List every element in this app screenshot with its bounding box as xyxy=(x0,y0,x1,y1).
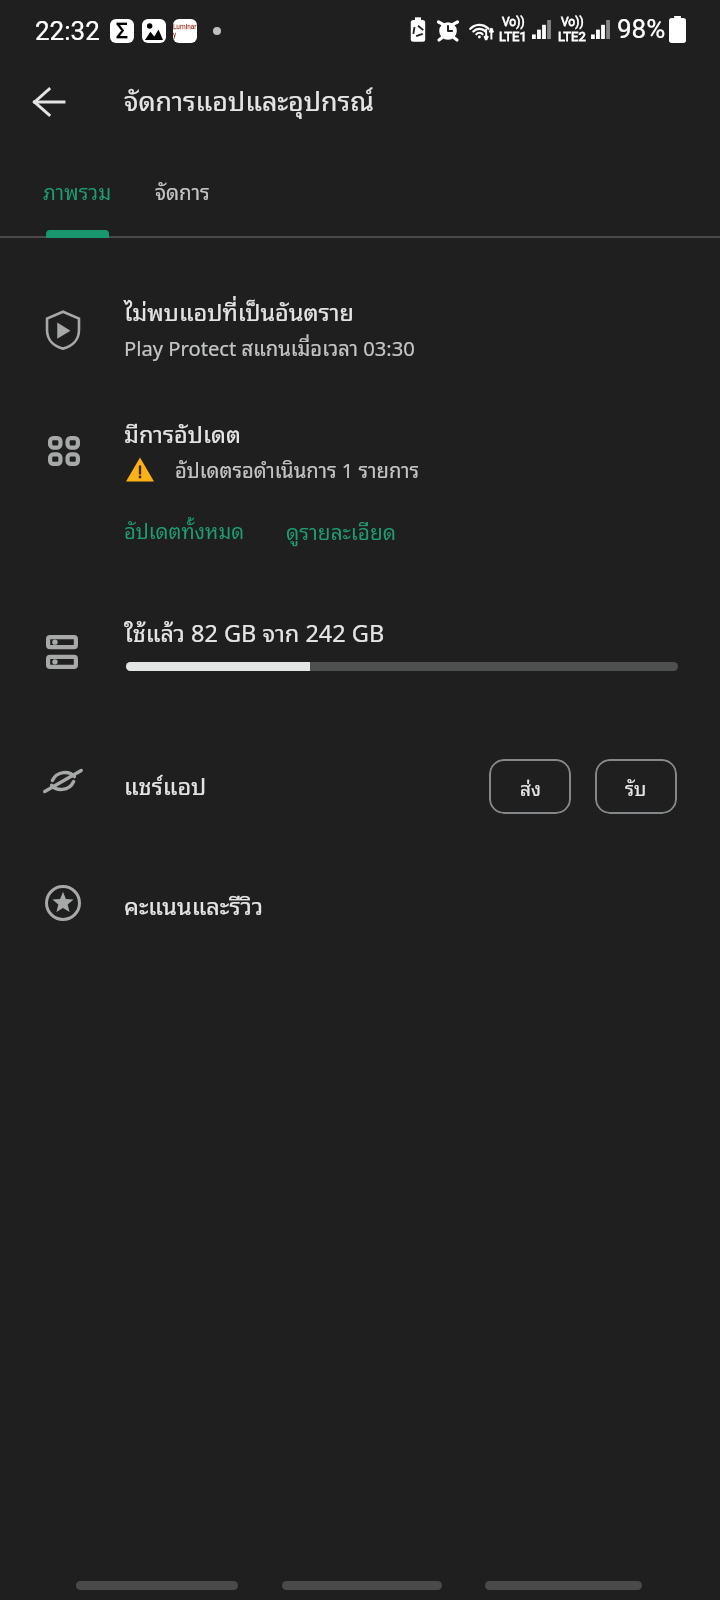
staticText: Vo)) xyxy=(502,15,525,29)
staticText: Vo)) xyxy=(561,15,584,29)
staticText: ดูรายละเอียด xyxy=(286,514,396,547)
button[interactable]: อัปเดตทั้งหมด xyxy=(124,514,245,546)
staticText: คะแนนและรีวิว xyxy=(124,886,263,924)
staticText: 98% xyxy=(617,14,666,44)
button[interactable]: ดูรายละเอียด xyxy=(286,514,396,547)
staticText: LTE1 xyxy=(499,29,527,44)
staticText: จัดการ xyxy=(155,174,210,207)
staticText: อัปเดตรอดำเนินการ 1 รายการ xyxy=(175,453,420,485)
staticText: แชร์แอป xyxy=(124,766,207,804)
staticText: จัดการแอปและอุปกรณ์ xyxy=(124,77,374,120)
button[interactable]: ไม่พบแอปที่เป็นอันตราย xyxy=(0,260,720,392)
button[interactable]: Back xyxy=(12,66,84,138)
staticText: ภาพรวม xyxy=(43,174,112,207)
staticText: Σ xyxy=(116,19,128,43)
button[interactable]: ใช้แล้ว 82 GB จาก 242 GB xyxy=(0,572,720,732)
staticText: ไม่พบแอปที่เป็นอันตราย xyxy=(124,292,354,330)
staticText: Luminary xyxy=(173,23,197,39)
button[interactable]: Home xyxy=(282,1566,442,1600)
button[interactable]: คะแนนและรีวิว xyxy=(0,860,720,970)
button[interactable]: ภาพรวม xyxy=(0,155,155,237)
staticText: รับ xyxy=(625,772,647,802)
button[interactable]: Back xyxy=(76,1566,238,1600)
button[interactable]: Send xyxy=(489,759,571,814)
button[interactable]: จัดการ xyxy=(105,155,260,237)
staticText: Play Protect สแกนเมื่อเวลา 03:30 xyxy=(124,331,415,363)
staticText: มีการอัปเดต xyxy=(124,414,241,452)
staticText: ใช้แล้ว 82 GB จาก 242 GB xyxy=(124,613,385,651)
button[interactable]: Receive xyxy=(595,759,677,814)
staticText: LTE2 xyxy=(558,29,586,44)
staticText: ส่ง xyxy=(520,772,541,802)
staticText: 22:32 xyxy=(35,16,100,46)
staticText: อัปเดตทั้งหมด xyxy=(124,514,245,546)
button[interactable]: Recents xyxy=(485,1566,642,1600)
